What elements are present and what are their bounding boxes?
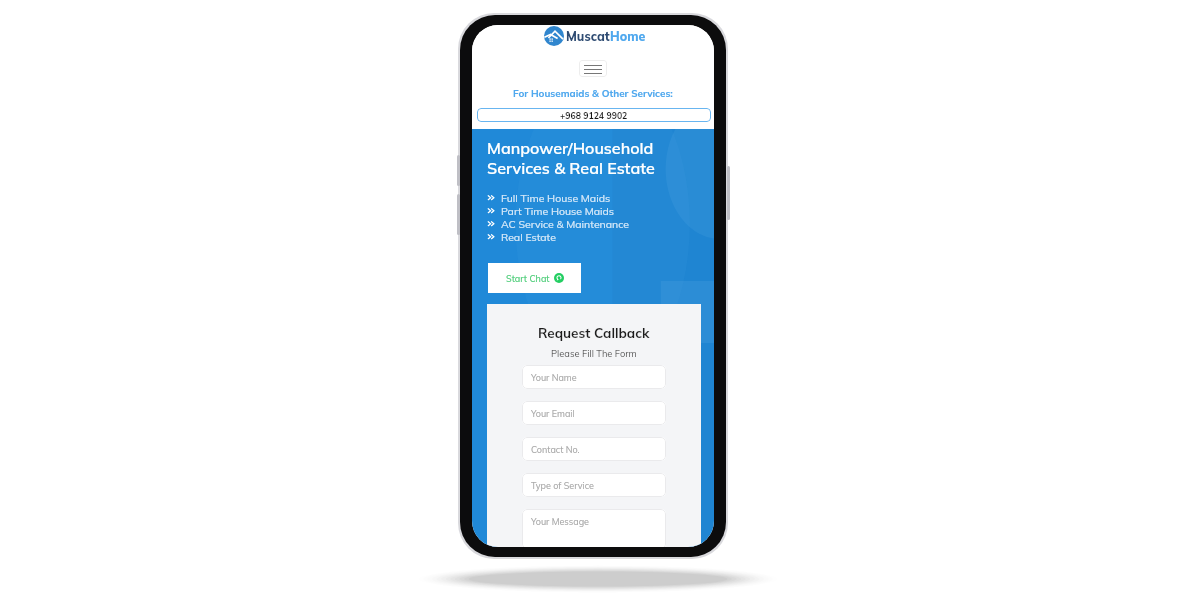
button[interactable]: Your Name bbox=[522, 365, 666, 389]
staticText: Home bbox=[610, 29, 646, 45]
button[interactable]: Open menu bbox=[579, 60, 607, 77]
staticText: Real Estate bbox=[501, 230, 556, 243]
staticText: Your Name bbox=[531, 372, 577, 383]
staticText: Services & Real Estate bbox=[487, 158, 655, 178]
button[interactable]: Your Email bbox=[522, 401, 666, 425]
staticText: Your Message bbox=[531, 516, 589, 527]
staticText: Contact No. bbox=[531, 444, 580, 455]
staticText: Full Time House Maids bbox=[501, 191, 611, 204]
staticText: Your Email bbox=[531, 408, 575, 419]
button[interactable]: Start Chat bbox=[488, 263, 581, 293]
button[interactable]: Your Message bbox=[522, 509, 666, 547]
staticText: Start Chat bbox=[506, 273, 550, 284]
staticText: AC Service & Maintenance bbox=[501, 217, 630, 230]
staticText: Please Fill The Form bbox=[551, 348, 637, 360]
button[interactable]: Type of Service bbox=[522, 473, 666, 497]
staticText: Request Callback bbox=[538, 324, 650, 341]
staticText: Manpower/Household bbox=[487, 138, 654, 158]
staticText: Type of Service bbox=[531, 480, 594, 491]
button[interactable]: Muscat bbox=[474, 25, 714, 48]
staticText: For Housemaids & Other Services: bbox=[513, 87, 673, 99]
staticText: Part Time House Maids bbox=[501, 204, 614, 217]
staticText: Muscat bbox=[566, 29, 610, 45]
button[interactable]: Contact No. bbox=[522, 437, 666, 461]
staticText: +968 9124 9902 bbox=[560, 110, 628, 121]
button[interactable]: +968 9124 9902 bbox=[477, 108, 711, 122]
